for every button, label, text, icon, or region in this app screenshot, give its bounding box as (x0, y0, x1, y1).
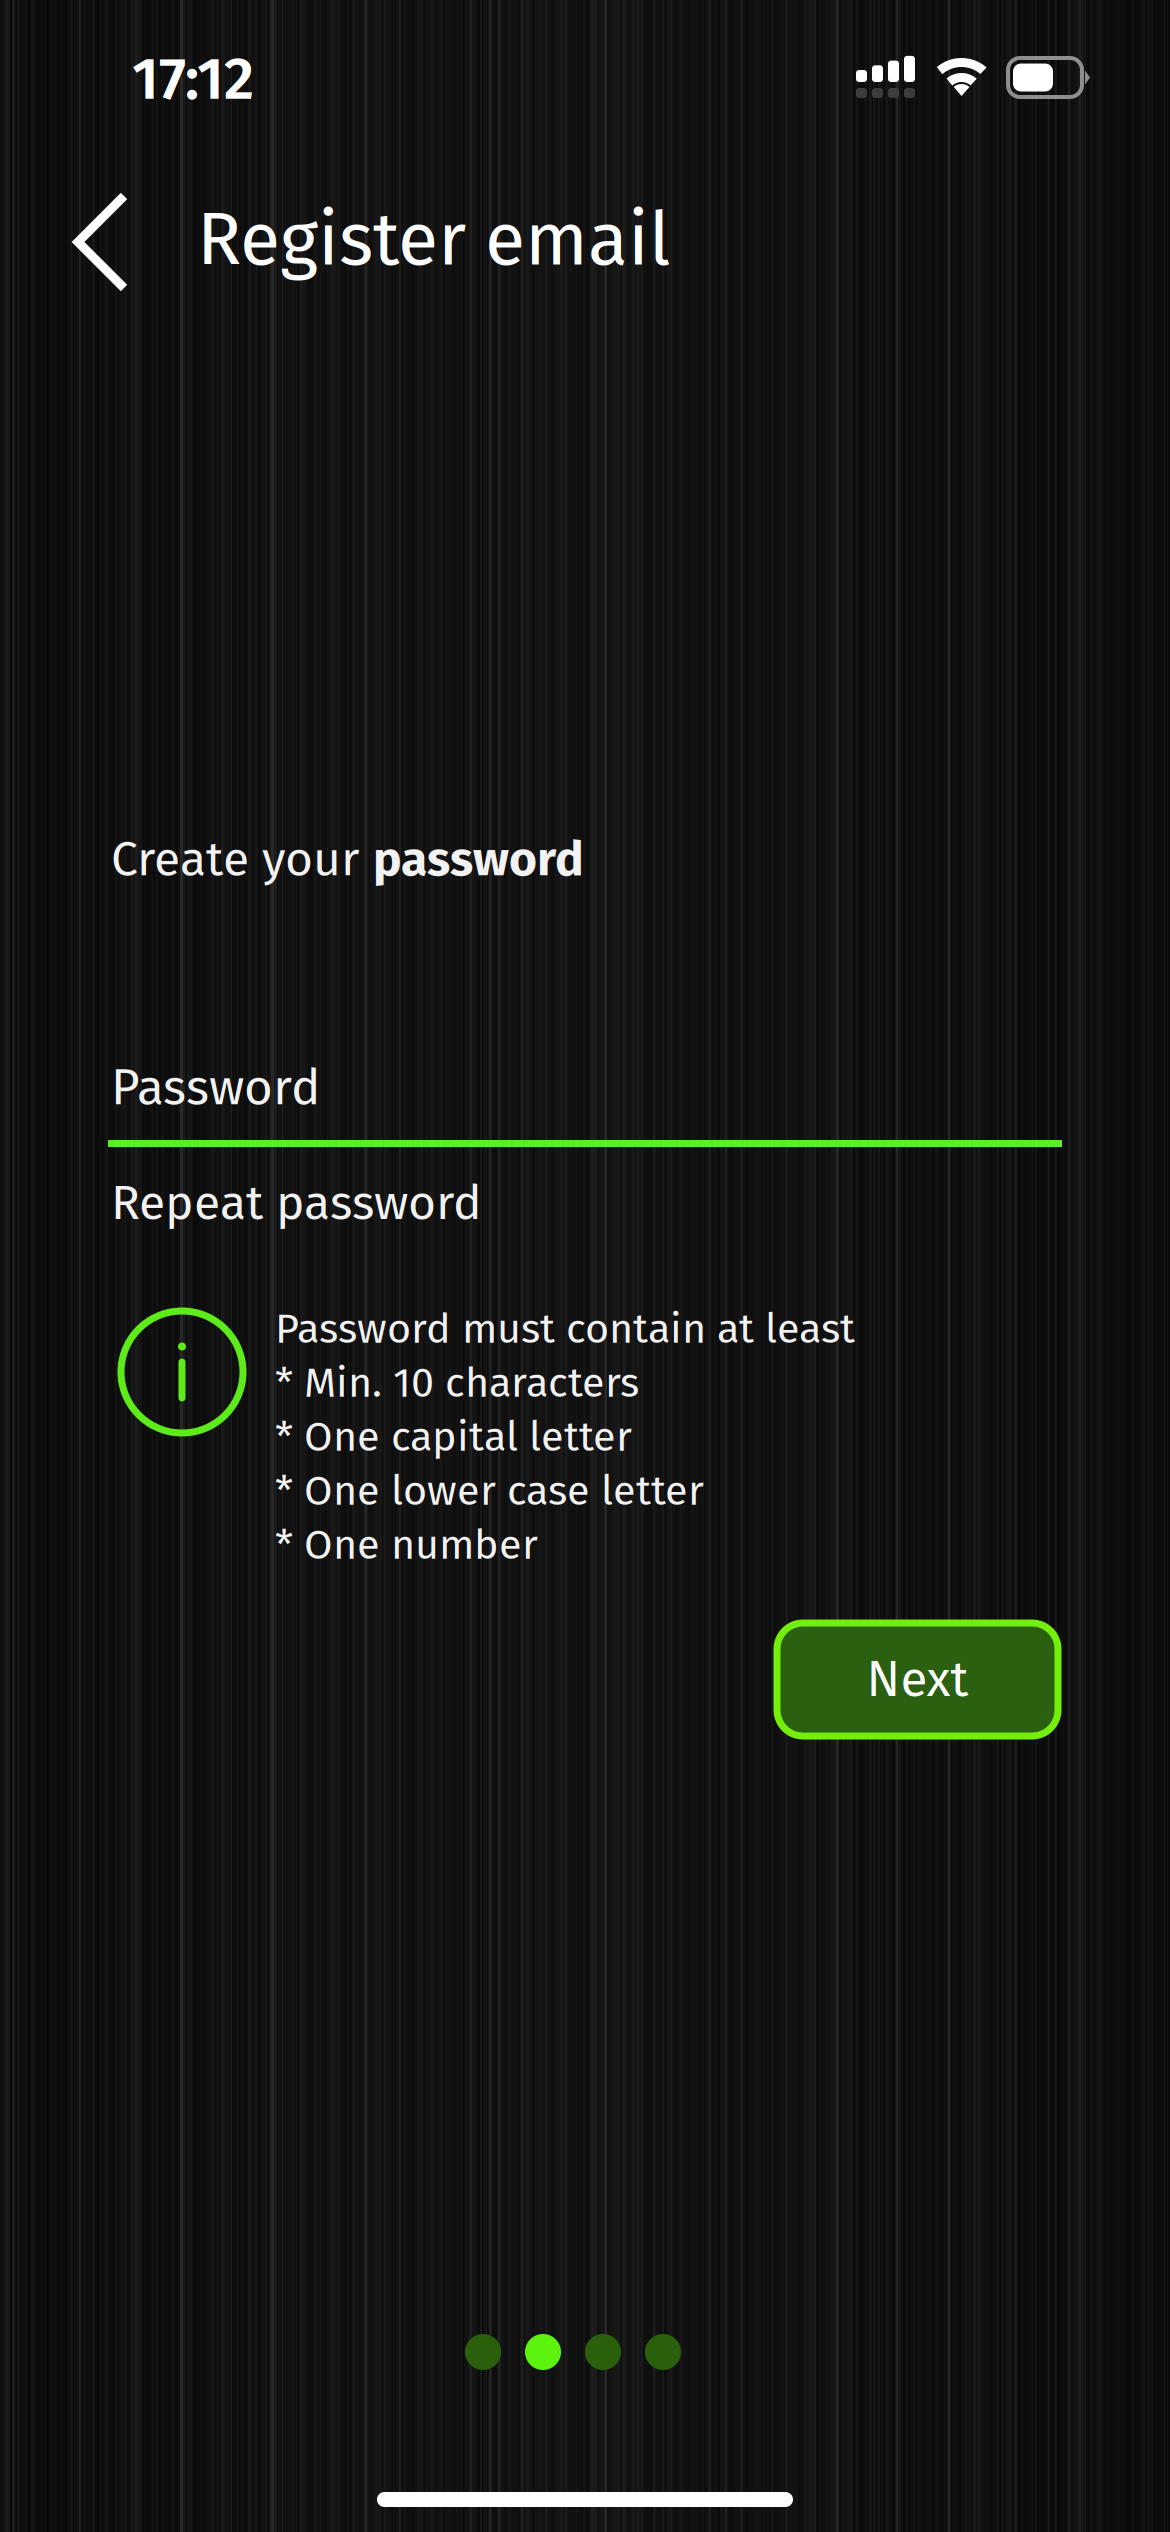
staticText: Register email (197, 196, 670, 284)
button[interactable]: Repeat password (108, 1160, 1062, 1260)
button[interactable]: Page 1 (465, 2334, 501, 2370)
staticText: 17:12 (132, 44, 254, 114)
staticText: Password (111, 1058, 321, 1117)
staticText: Next (866, 1650, 968, 1709)
staticText: * Min. 10 characters (275, 1358, 639, 1408)
button[interactable]: Password (108, 1040, 1062, 1147)
staticText: * One number (275, 1520, 538, 1570)
button[interactable]: Back (73, 172, 193, 312)
staticText: * One lower case letter (275, 1466, 704, 1516)
button[interactable]: Page 2, current page (525, 2334, 561, 2370)
button[interactable]: Page 4 (645, 2334, 681, 2370)
staticText: Create your password (111, 831, 584, 887)
button[interactable]: Next (777, 1623, 1058, 1736)
staticText: Password must contain at least (275, 1304, 855, 1354)
button[interactable]: Page 3 (585, 2334, 621, 2370)
staticText: Repeat password (111, 1174, 482, 1232)
staticText: * One capital letter (275, 1412, 632, 1462)
